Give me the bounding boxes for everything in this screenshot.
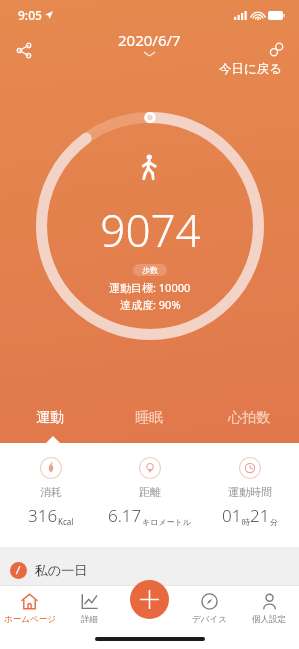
staticText: 私の一日 bbox=[35, 562, 88, 578]
staticText: 316 bbox=[28, 504, 58, 527]
button[interactable]: 追加 bbox=[130, 580, 169, 619]
staticText: 9:05 bbox=[18, 7, 42, 23]
staticText: 6.17 bbox=[108, 504, 142, 527]
button[interactable]: 個人設定 bbox=[239, 586, 299, 634]
staticText: 運動目標: 10000 bbox=[109, 280, 191, 295]
staticText: 歩数 bbox=[142, 265, 158, 275]
button[interactable]: デバイス bbox=[179, 586, 239, 634]
button[interactable]: 睡眠 bbox=[99, 403, 199, 433]
staticText: 距離 bbox=[139, 485, 161, 499]
button[interactable]: 運動時間 bbox=[200, 457, 299, 527]
button[interactable]: 今日に戻る bbox=[215, 58, 287, 80]
staticText: 分 bbox=[270, 517, 278, 527]
button[interactable]: 消耗 bbox=[1, 457, 100, 527]
button[interactable]: 心拍数 bbox=[199, 403, 299, 433]
button[interactable]: 距離 bbox=[100, 457, 199, 527]
staticText: ホームページ bbox=[4, 614, 56, 625]
staticText: キロメートル bbox=[142, 517, 191, 527]
button[interactable]: リンク bbox=[261, 34, 291, 64]
button[interactable]: 私の一日 bbox=[0, 555, 299, 585]
button[interactable]: 2020/6/7 bbox=[118, 30, 181, 56]
staticText: 時 bbox=[242, 517, 250, 527]
staticText: 心拍数 bbox=[228, 409, 270, 427]
button[interactable]: ホームページ bbox=[0, 586, 59, 634]
button[interactable]: 詳細 bbox=[59, 586, 119, 634]
staticText: デバイス bbox=[192, 614, 227, 625]
staticText: 睡眠 bbox=[135, 409, 163, 427]
staticText: 9074 bbox=[100, 200, 201, 260]
staticText: 今日に戻る bbox=[219, 61, 283, 77]
staticText: 2020/6/7 bbox=[118, 30, 181, 50]
staticText: 消耗 bbox=[40, 485, 62, 499]
staticText: 個人設定 bbox=[252, 614, 286, 625]
staticText: 達成度: 90% bbox=[120, 297, 181, 312]
button[interactable]: 共有 bbox=[8, 34, 40, 66]
button[interactable]: 運動 bbox=[0, 403, 99, 433]
staticText: 詳細 bbox=[81, 614, 98, 625]
staticText: 01 bbox=[222, 504, 242, 527]
staticText: Kcal bbox=[58, 516, 74, 527]
staticText: 運動時間 bbox=[228, 485, 272, 499]
staticText: 運動 bbox=[36, 409, 64, 427]
staticText: 21 bbox=[250, 504, 270, 527]
